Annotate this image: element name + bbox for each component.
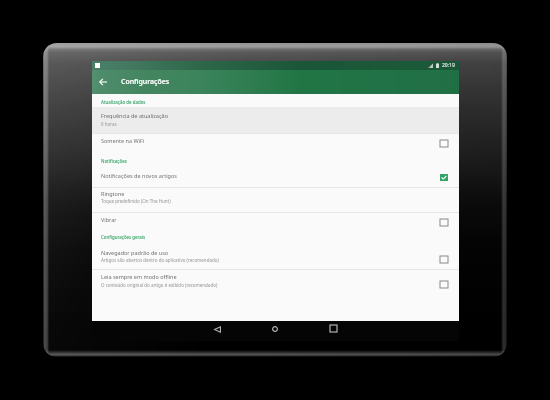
button[interactable]: Voltar [207,319,227,339]
staticText: Configurações gerais [101,234,146,240]
button[interactable]: Início [265,319,285,339]
staticText: Navegador padrão de uso [101,249,169,256]
button[interactable]: Somente na WiFi [92,133,459,187]
staticText: Notificações [101,158,127,164]
staticText: O conteúdo original do artigo é exibido … [101,282,218,288]
staticText: Ringtone [101,190,125,197]
staticText: Atualização de dados [101,99,146,105]
staticText: Notificações de novos artigos [101,172,177,179]
button[interactable]: Voltar [95,74,111,90]
staticText: Somente na WiFi [101,137,145,144]
button[interactable]: Vibrar [92,212,459,269]
button[interactable]: Leia sempre em modo offline [92,269,459,293]
button[interactable]: Frequência de atualização [92,107,459,133]
staticText: Leia sempre em modo offline [101,273,177,280]
button[interactable]: Notificações de novos artigos [92,168,459,187]
staticText: Frequência de atualização [101,112,169,119]
staticText: 6 horas [101,121,117,127]
staticText: Configurações [121,77,170,87]
button[interactable]: Recentes [323,318,343,338]
staticText: Artigos são abertos dentro do aplicativo… [101,257,219,263]
button[interactable]: Ringtone [92,187,459,212]
staticText: 20:19 [442,62,455,69]
staticText: Vibrar [101,216,117,223]
staticText: Toque predefinido (On The Hunt) [101,198,171,204]
button[interactable]: Navegador padrão de uso [92,245,459,269]
